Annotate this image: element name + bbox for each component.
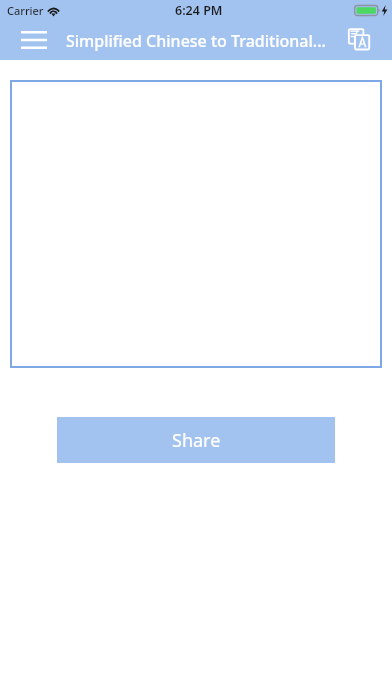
button[interactable]: Share (57, 417, 335, 463)
staticText: 6:24 PM (175, 2, 223, 19)
button[interactable]: Menu (16, 20, 52, 60)
button[interactable]: Translate (340, 19, 380, 59)
staticText: Carrier (7, 3, 44, 18)
staticText: Share (172, 428, 221, 453)
staticText: Simplified Chinese to Traditional... (66, 30, 326, 52)
button[interactable]: Text to convert (10, 80, 382, 368)
